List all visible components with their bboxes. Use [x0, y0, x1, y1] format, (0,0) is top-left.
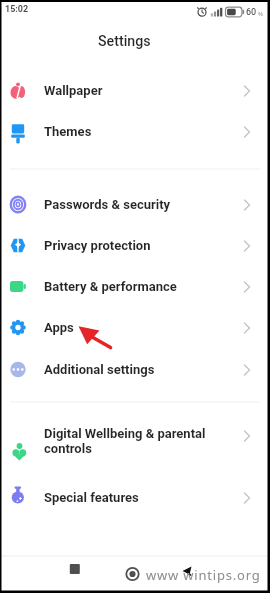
button[interactable]: Wallpaper	[0, 70, 270, 111]
staticText: Wallpaper	[44, 83, 103, 98]
button[interactable]: Passwords & security	[0, 184, 270, 225]
button[interactable]: Special features	[0, 477, 270, 518]
staticText: Digital Wellbeing & parental controls	[44, 426, 206, 456]
staticText: Passwords & security	[44, 197, 171, 212]
staticText: Special features	[44, 490, 139, 505]
button[interactable]: Themes	[0, 111, 270, 152]
staticText: Themes	[44, 124, 92, 139]
button[interactable]: Additional settings	[0, 349, 270, 390]
button[interactable]: Battery & performance	[0, 266, 270, 307]
staticText: www wintips.org	[146, 566, 261, 584]
button[interactable]: Privacy protection	[0, 225, 270, 266]
staticText: Privacy protection	[44, 238, 151, 253]
staticText: Additional settings	[44, 362, 155, 377]
staticText: Apps	[44, 320, 74, 335]
staticText: 60	[246, 7, 257, 18]
staticText: Settings	[98, 33, 151, 50]
staticText: Battery & performance	[44, 279, 177, 294]
staticText: %	[258, 10, 263, 18]
staticText: 15:02	[5, 4, 29, 15]
button[interactable]: Apps	[0, 307, 270, 348]
button[interactable]: Digital Wellbeing & parental controls	[0, 416, 270, 466]
